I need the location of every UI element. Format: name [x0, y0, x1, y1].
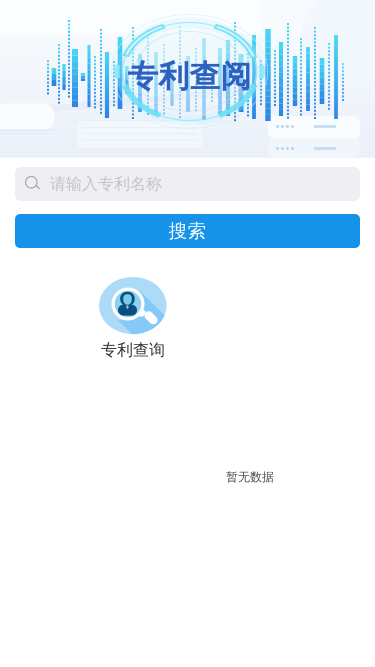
button[interactable]: 搜索	[15, 214, 360, 248]
button[interactable]: 请输入专利名称	[15, 167, 360, 201]
button[interactable]: 专利查询	[90, 277, 176, 360]
staticText: 暂无数据	[226, 470, 274, 484]
staticText: 专利查询	[101, 340, 165, 360]
staticText: 请输入专利名称	[50, 174, 162, 194]
staticText: 搜索	[168, 219, 206, 242]
staticText: 专利查阅	[127, 58, 251, 95]
